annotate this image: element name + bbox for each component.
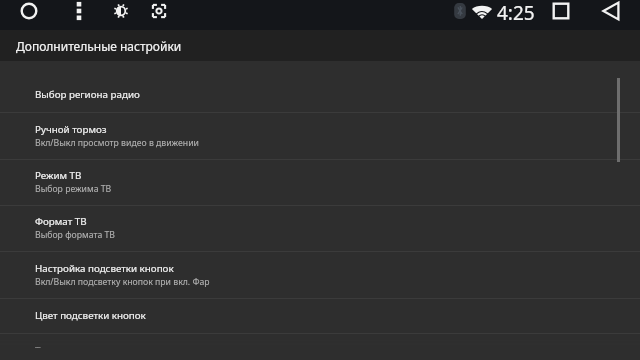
button[interactable]: Back — [599, 0, 623, 23]
button[interactable]: Recents — [549, 0, 573, 23]
button[interactable]: Bluetooth — [449, 0, 471, 22]
button[interactable]: More options — [67, 0, 91, 23]
staticText: 4:25 — [497, 0, 535, 22]
staticText: Дополнительные настройки — [16, 38, 182, 54]
button[interactable]: Screenshot — [147, 0, 171, 23]
button[interactable]: Формат ТВ — [0, 206, 640, 251]
button[interactable]: Цвет подсветки кнопок — [0, 299, 640, 333]
staticText: Выбор формата ТВ — [35, 229, 115, 241]
button[interactable]: Настройка подсветки кнопок — [0, 252, 640, 298]
button[interactable]: Wi-Fi — [470, 0, 494, 23]
staticText: Формат ТВ — [35, 215, 87, 228]
button[interactable]: Режим ТВ — [0, 160, 640, 205]
staticText: Цвет подсветки кнопок — [35, 309, 146, 322]
staticText: Тип рулевого колеса — [35, 344, 133, 357]
staticText: Вкл/Выкл просмотр видео в движении — [35, 137, 199, 149]
staticText: Выбор региона радио — [35, 88, 140, 101]
staticText: Настройка подсветки кнопок — [35, 262, 174, 275]
button[interactable]: Brightness — [109, 0, 133, 23]
staticText: Режим ТВ — [35, 169, 82, 182]
staticText: Выбор режима ТВ — [35, 183, 112, 195]
staticText: Ручной тормоз — [35, 123, 107, 136]
button[interactable]: Ручной тормоз — [0, 113, 640, 159]
button[interactable]: Выбор региона радио — [0, 78, 640, 112]
staticText: Вкл/Выкл подсветку кнопок при вкл. Фар — [35, 276, 210, 288]
button[interactable]: Home — [17, 0, 41, 23]
